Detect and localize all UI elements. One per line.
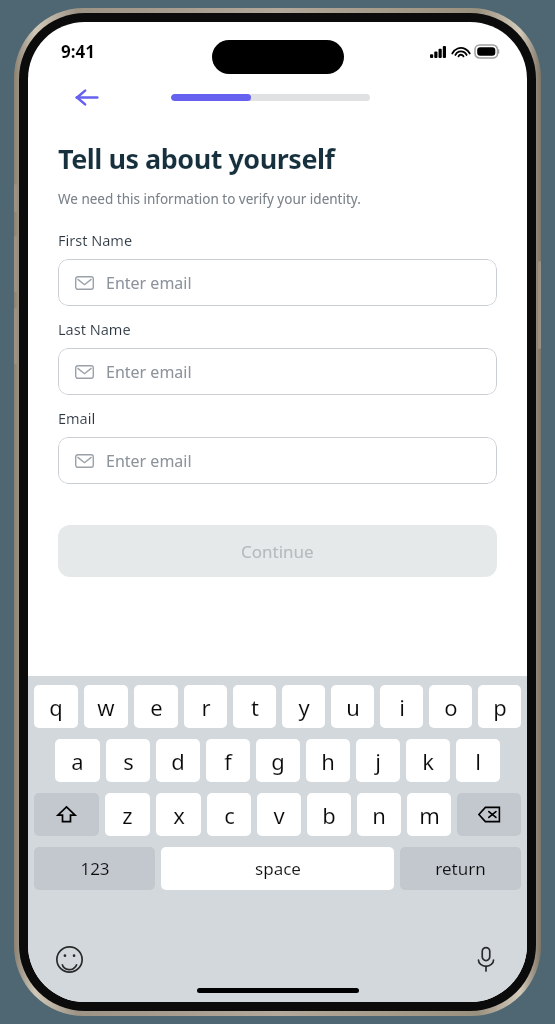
staticText: We need this information to verify your … xyxy=(58,190,361,208)
staticText: o xyxy=(444,692,458,722)
staticText: Enter email xyxy=(106,450,192,472)
button[interactable]: w xyxy=(84,685,128,728)
staticText: q xyxy=(49,692,63,722)
button[interactable]: e xyxy=(134,685,178,728)
button[interactable]: Shift xyxy=(34,793,99,836)
staticText: c xyxy=(224,800,235,830)
button[interactable]: r xyxy=(184,685,227,728)
staticText: i xyxy=(399,692,405,722)
button[interactable]: l xyxy=(456,739,500,782)
button[interactable]: y xyxy=(282,685,325,728)
staticText: g xyxy=(271,746,285,776)
staticText: Email xyxy=(58,408,96,428)
button[interactable]: k xyxy=(406,739,450,782)
button[interactable]: z xyxy=(105,793,150,836)
staticText: a xyxy=(71,746,84,776)
button[interactable]: Emoji keyboard xyxy=(50,940,88,978)
button[interactable]: b xyxy=(307,793,351,836)
staticText: First Name xyxy=(58,230,133,250)
staticText: n xyxy=(372,800,386,830)
button[interactable]: a xyxy=(55,739,100,782)
staticText: x xyxy=(173,800,185,830)
button[interactable]: p xyxy=(478,685,521,728)
button[interactable]: return xyxy=(400,847,521,890)
button[interactable]: t xyxy=(233,685,276,728)
button[interactable]: Dictation xyxy=(467,940,505,978)
staticText: y xyxy=(298,692,310,722)
staticText: 9:41 xyxy=(61,40,95,63)
staticText: u xyxy=(346,692,360,722)
button[interactable]: Enter email xyxy=(58,259,497,306)
staticText: r xyxy=(201,692,211,722)
button[interactable]: g xyxy=(256,739,300,782)
button[interactable]: h xyxy=(306,739,350,782)
staticText: 123 xyxy=(80,857,110,880)
staticText: k xyxy=(422,746,434,776)
button[interactable]: x xyxy=(156,793,201,836)
button[interactable]: c xyxy=(207,793,251,836)
staticText: j xyxy=(375,746,381,776)
staticText: v xyxy=(273,800,285,830)
button[interactable]: u xyxy=(331,685,374,728)
button[interactable]: q xyxy=(34,685,78,728)
button[interactable]: m xyxy=(407,793,451,836)
staticText: s xyxy=(123,746,134,776)
button[interactable]: d xyxy=(156,739,200,782)
button[interactable]: o xyxy=(429,685,472,728)
button[interactable]: Enter email xyxy=(58,437,497,484)
staticText: e xyxy=(150,692,163,722)
button[interactable]: i xyxy=(380,685,423,728)
staticText: p xyxy=(493,692,507,722)
staticText: w xyxy=(97,692,115,722)
staticText: Continue xyxy=(241,540,314,563)
button[interactable]: Backspace xyxy=(457,793,521,836)
button[interactable]: f xyxy=(206,739,250,782)
staticText: f xyxy=(224,746,232,776)
button[interactable]: space xyxy=(161,847,394,890)
staticText: z xyxy=(122,800,133,830)
button[interactable]: n xyxy=(357,793,401,836)
staticText: Last Name xyxy=(58,319,131,339)
staticText: t xyxy=(251,692,259,722)
button[interactable]: s xyxy=(106,739,150,782)
button[interactable]: v xyxy=(257,793,301,836)
staticText: d xyxy=(171,746,185,776)
staticText: space xyxy=(255,857,301,880)
button[interactable]: 123 xyxy=(34,847,155,890)
staticText: l xyxy=(475,746,481,776)
staticText: return xyxy=(435,857,486,880)
button[interactable]: Back xyxy=(70,81,102,113)
staticText: b xyxy=(322,800,336,830)
button[interactable]: Enter email xyxy=(58,348,497,395)
button[interactable]: Continue xyxy=(58,525,497,577)
button[interactable]: j xyxy=(356,739,400,782)
staticText: h xyxy=(321,746,335,776)
staticText: m xyxy=(419,800,440,830)
staticText: Tell us about yourself xyxy=(58,140,335,177)
staticText: Enter email xyxy=(106,361,192,383)
staticText: Enter email xyxy=(106,272,192,294)
